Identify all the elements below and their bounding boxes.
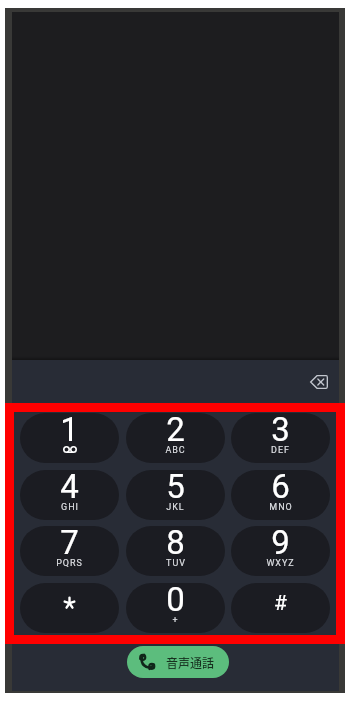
button[interactable]: 2: [126, 413, 225, 463]
staticText: 6: [271, 470, 290, 506]
button[interactable]: 7: [20, 526, 119, 576]
button[interactable]: 6: [231, 470, 330, 520]
button[interactable]: #: [231, 583, 330, 633]
button[interactable]: 8: [126, 526, 225, 576]
staticText: #: [274, 591, 287, 616]
staticText: 音声通話: [166, 654, 215, 671]
staticText: 4: [60, 470, 79, 506]
staticText: GHI: [61, 502, 79, 513]
button[interactable]: 5: [126, 470, 225, 520]
staticText: +: [172, 615, 179, 626]
button[interactable]: Backspace: [304, 367, 334, 396]
staticText: JKL: [166, 502, 185, 513]
button[interactable]: 1: [20, 413, 119, 463]
button[interactable]: 音声通話: [127, 646, 229, 678]
staticText: 9: [271, 526, 290, 562]
button[interactable]: 9: [231, 526, 330, 576]
staticText: PQRS: [56, 558, 83, 569]
staticText: 0: [166, 583, 185, 619]
staticText: 3: [271, 413, 290, 449]
staticText: 7: [60, 526, 79, 562]
staticText: DEF: [271, 445, 290, 456]
staticText: 2: [166, 413, 185, 449]
staticText: 5: [166, 470, 185, 506]
staticText: 1: [60, 413, 79, 449]
button[interactable]: 4: [20, 470, 119, 520]
button[interactable]: [20, 583, 119, 633]
staticText: TUV: [166, 558, 186, 569]
staticText: WXYZ: [266, 558, 295, 569]
button[interactable]: 3: [231, 413, 330, 463]
staticText: 8: [166, 526, 185, 562]
staticText: ABC: [165, 445, 186, 456]
staticText: MNO: [269, 502, 293, 513]
button[interactable]: 0: [126, 583, 225, 633]
